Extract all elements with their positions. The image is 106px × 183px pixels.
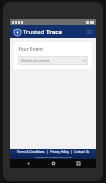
- staticText: Trusted: [23, 28, 46, 36]
- staticText: Your Event: [18, 46, 44, 53]
- button[interactable]: Trusted: [14, 28, 62, 36]
- button[interactable]: Contact Us: [74, 150, 90, 154]
- button[interactable]: Home: [46, 159, 60, 168]
- button[interactable]: Terms & Conditions: [17, 150, 45, 154]
- staticText: Privacy Policy: [50, 150, 69, 154]
- button[interactable]: Select an event: [18, 56, 88, 65]
- staticText: |: [45, 150, 50, 154]
- button[interactable]: Privacy Policy: [50, 150, 69, 154]
- staticText: Powered by Trusted Trace 2019: [35, 155, 72, 158]
- staticText: |: [69, 150, 74, 154]
- staticText: Contact Us: [74, 150, 90, 154]
- staticText: Trace: [46, 28, 62, 36]
- button[interactable]: Menu: [85, 28, 93, 36]
- button[interactable]: Recent apps: [71, 159, 85, 168]
- button[interactable]: Back: [21, 159, 35, 168]
- staticText: Select an event: [21, 58, 50, 63]
- staticText: Terms & Conditions: [17, 150, 45, 154]
